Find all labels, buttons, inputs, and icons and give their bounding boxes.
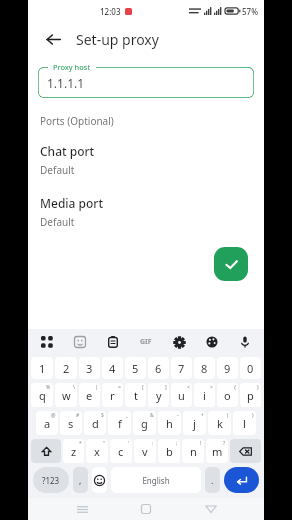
staticText: % bbox=[46, 384, 51, 391]
staticText: Ports (Optional) bbox=[40, 114, 114, 128]
staticText: # bbox=[76, 412, 80, 419]
button[interactable]: a bbox=[36, 411, 58, 435]
button[interactable]: w bbox=[55, 383, 77, 407]
staticText: o bbox=[224, 388, 231, 403]
button[interactable]: 2 bbox=[55, 357, 77, 379]
staticText: 5 bbox=[132, 361, 139, 376]
staticText: Set-up proxy bbox=[76, 30, 159, 49]
staticText: g bbox=[141, 416, 148, 431]
button[interactable]: 0 bbox=[240, 357, 261, 379]
staticText: ) bbox=[252, 412, 254, 419]
button[interactable]: o bbox=[217, 383, 238, 407]
staticText: < bbox=[187, 384, 190, 391]
staticText: y bbox=[156, 388, 162, 403]
button[interactable]: GIF bbox=[135, 331, 157, 353]
staticText: Proxy host bbox=[53, 62, 91, 72]
button[interactable]: Media port bbox=[40, 195, 252, 229]
staticText: 8 bbox=[201, 361, 208, 376]
button[interactable]: ?123 bbox=[33, 467, 69, 493]
staticText: \ bbox=[73, 384, 75, 391]
staticText: ' bbox=[128, 440, 130, 447]
button[interactable]: Voice input bbox=[234, 331, 256, 353]
button[interactable]: Save bbox=[214, 247, 248, 281]
button[interactable]: x bbox=[86, 439, 108, 463]
button[interactable]: Clipboard bbox=[102, 331, 124, 353]
button[interactable]: 3 bbox=[79, 357, 100, 379]
button[interactable]: r bbox=[102, 383, 123, 407]
button[interactable]: Stickers bbox=[69, 331, 91, 353]
staticText: b bbox=[166, 444, 173, 459]
button[interactable]: d bbox=[84, 411, 106, 435]
button[interactable]: Home bbox=[135, 498, 157, 520]
staticText: } bbox=[257, 384, 259, 391]
staticText: @ bbox=[51, 412, 56, 419]
staticText: 2 bbox=[63, 361, 70, 376]
button[interactable]: Recents bbox=[71, 498, 93, 520]
staticText: h bbox=[166, 416, 173, 431]
staticText: English bbox=[142, 475, 170, 486]
staticText: ? bbox=[223, 440, 226, 447]
staticText: GIF bbox=[140, 337, 152, 347]
button[interactable]: 7 bbox=[171, 357, 192, 379]
button[interactable]: Chat port bbox=[40, 143, 252, 177]
button[interactable]: z bbox=[63, 439, 84, 463]
button[interactable]: y bbox=[148, 383, 169, 407]
button[interactable]: n bbox=[182, 439, 204, 463]
button[interactable]: p bbox=[240, 383, 261, 407]
staticText: c bbox=[118, 444, 124, 459]
button[interactable]: Period bbox=[205, 467, 220, 493]
button[interactable]: 1.1.1.1 bbox=[38, 67, 254, 98]
button[interactable]: 6 bbox=[148, 357, 169, 379]
staticText: & bbox=[150, 412, 154, 419]
button[interactable]: Comma bbox=[73, 467, 88, 493]
button[interactable]: m bbox=[206, 439, 228, 463]
staticText: z bbox=[71, 444, 77, 459]
button[interactable]: j bbox=[183, 411, 206, 435]
button[interactable]: 1 bbox=[31, 357, 53, 379]
button[interactable]: 9 bbox=[217, 357, 238, 379]
staticText: $ bbox=[101, 412, 104, 419]
button[interactable]: e bbox=[79, 383, 100, 407]
button[interactable]: u bbox=[171, 383, 192, 407]
button[interactable]: i bbox=[194, 383, 215, 407]
staticText: ] bbox=[165, 384, 167, 391]
button[interactable]: g bbox=[133, 411, 156, 435]
button[interactable]: s bbox=[60, 411, 82, 435]
button[interactable]: English bbox=[111, 467, 201, 493]
button[interactable]: Themes bbox=[201, 331, 223, 353]
staticText: a bbox=[44, 416, 51, 431]
button[interactable]: Settings bbox=[168, 331, 190, 353]
button[interactable]: Back bbox=[200, 498, 222, 520]
button[interactable]: q bbox=[31, 383, 53, 407]
button[interactable]: 8 bbox=[194, 357, 215, 379]
button[interactable]: 4 bbox=[102, 357, 123, 379]
staticText: u bbox=[178, 388, 185, 403]
button[interactable]: l bbox=[233, 411, 256, 435]
button[interactable]: 5 bbox=[125, 357, 146, 379]
button[interactable]: t bbox=[125, 383, 146, 407]
button[interactable]: b bbox=[158, 439, 180, 463]
button[interactable]: Backspace bbox=[230, 439, 261, 463]
staticText: + bbox=[201, 412, 204, 419]
staticText: 6 bbox=[155, 361, 162, 376]
staticText: = bbox=[118, 384, 121, 391]
button[interactable]: f bbox=[108, 411, 131, 435]
staticText: : bbox=[152, 440, 154, 447]
button[interactable]: c bbox=[110, 439, 132, 463]
button[interactable]: k bbox=[208, 411, 231, 435]
button[interactable]: h bbox=[158, 411, 181, 435]
button[interactable]: Shift bbox=[31, 439, 61, 463]
staticText: m bbox=[212, 444, 223, 459]
button[interactable]: Back bbox=[40, 26, 66, 52]
staticText: " bbox=[103, 440, 106, 447]
staticText: r bbox=[110, 388, 115, 403]
button[interactable]: Enter bbox=[224, 467, 259, 493]
staticText: ; bbox=[176, 440, 178, 447]
button[interactable]: v bbox=[134, 439, 156, 463]
button[interactable]: Apps bbox=[36, 331, 58, 353]
button[interactable]: Emoji bbox=[92, 467, 107, 493]
staticText: x bbox=[94, 444, 100, 459]
staticText: d bbox=[92, 416, 99, 431]
staticText: 3 bbox=[86, 361, 93, 376]
staticText: * bbox=[79, 440, 82, 447]
